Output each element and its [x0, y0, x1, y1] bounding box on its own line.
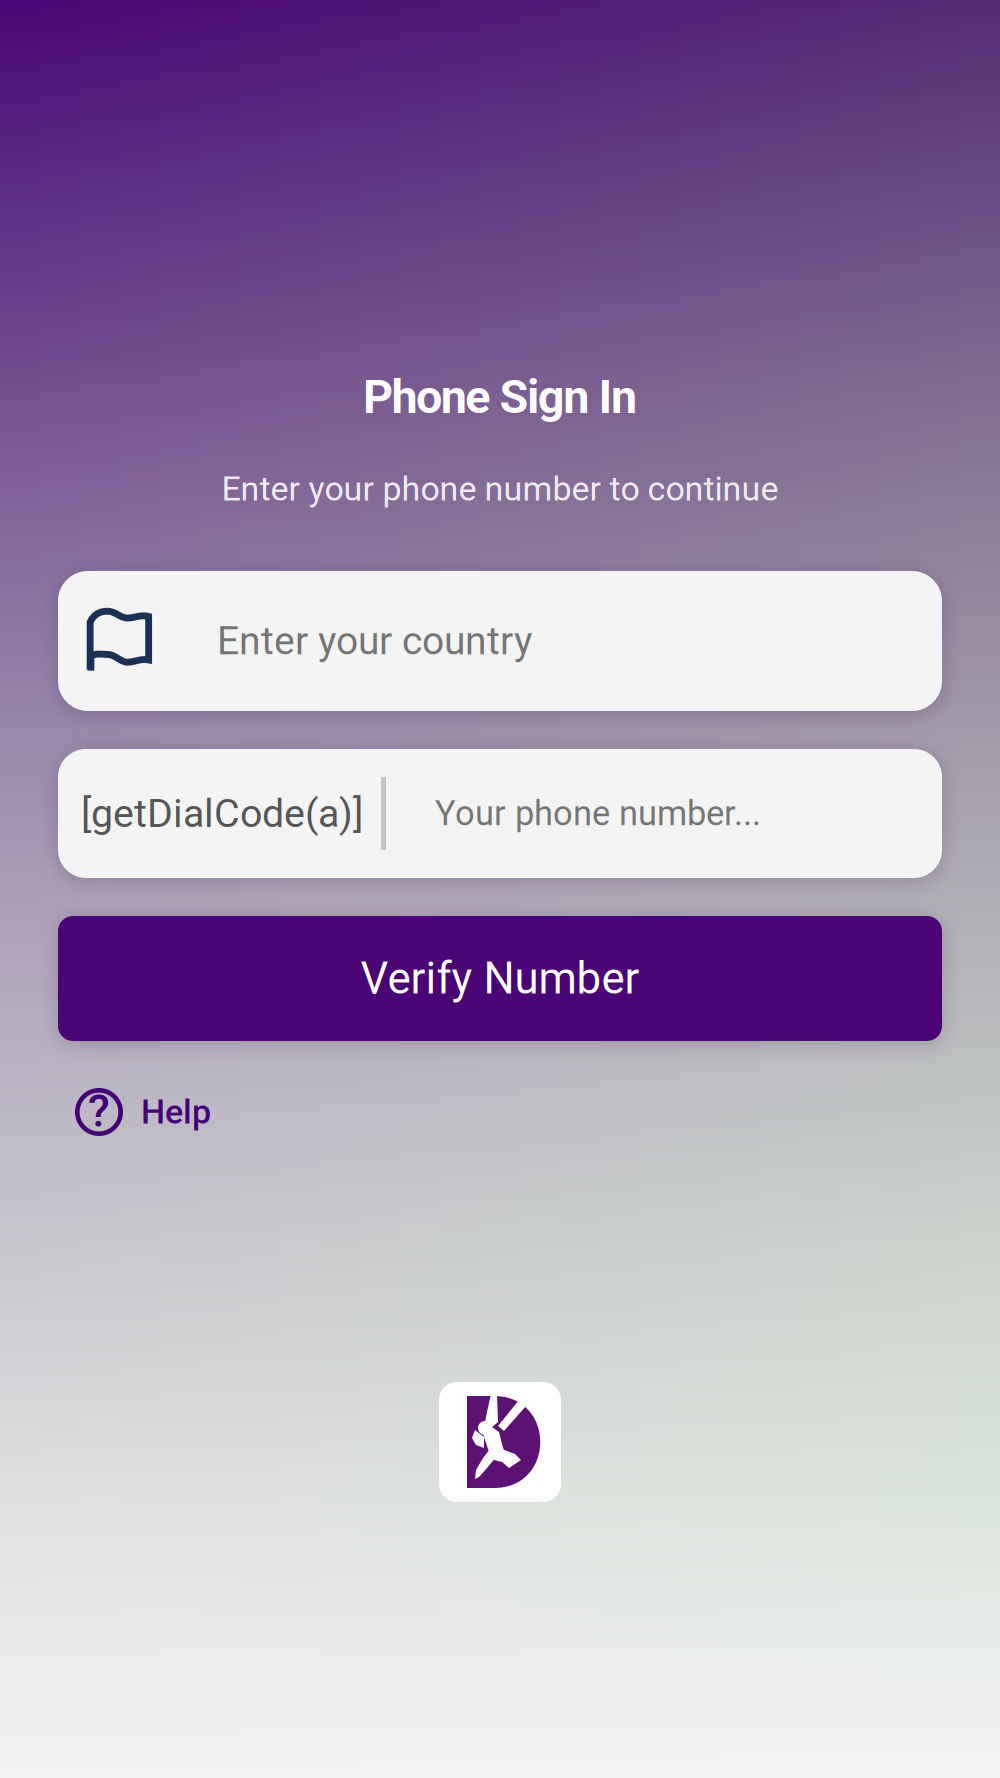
button[interactable]: Verify Number [58, 916, 942, 1041]
staticText: Enter your country [217, 618, 532, 664]
staticText: Enter your phone number to continue [221, 469, 778, 509]
button[interactable]: ? [58, 1081, 358, 1143]
staticText: Verify Number [360, 953, 639, 1004]
staticText: Your phone number... [435, 793, 761, 834]
staticText: ? [88, 1085, 110, 1137]
staticText: Phone Sign In [363, 370, 637, 424]
button[interactable]: Enter your country [58, 571, 942, 711]
staticText: [getDialCode(a)] [81, 790, 363, 837]
button[interactable]: [getDialCode(a)] [58, 749, 942, 878]
staticText: Help [141, 1092, 211, 1132]
